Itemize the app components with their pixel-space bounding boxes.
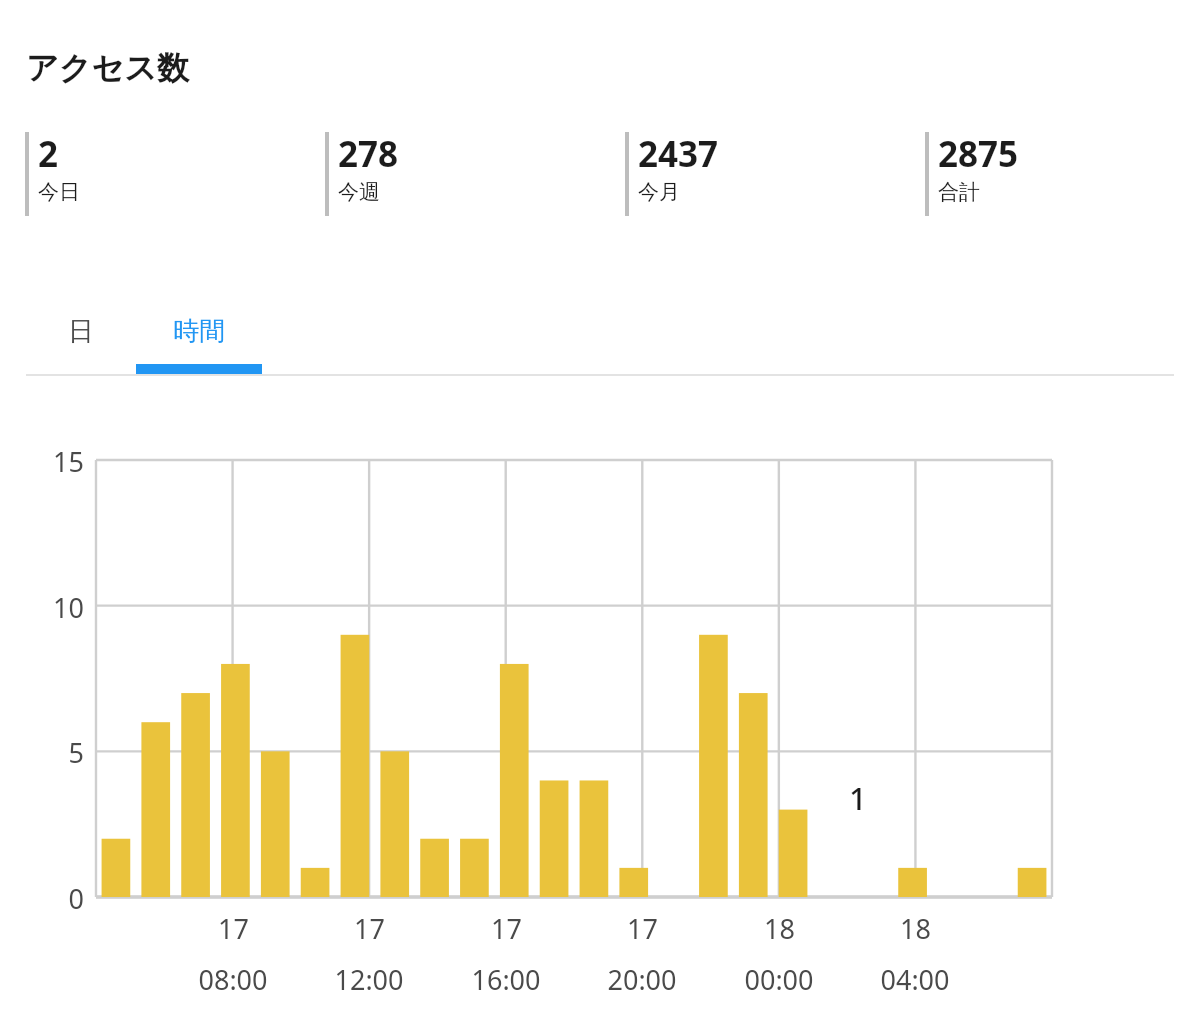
staticText: 04:00 [880, 961, 950, 998]
button[interactable]: 278 [300, 130, 600, 222]
staticText: 日 [68, 315, 94, 348]
staticText: 12:00 [334, 961, 404, 998]
staticText: 今日 [38, 179, 80, 205]
staticText: 08:00 [198, 961, 268, 998]
staticText: 17 [218, 910, 249, 947]
staticText: 17 [491, 910, 522, 947]
staticText: 2875 [938, 130, 1019, 178]
staticText: 時間 [173, 315, 225, 348]
staticText: 10 [53, 589, 84, 626]
staticText: 16:00 [471, 961, 541, 998]
staticText: 2 [38, 130, 59, 178]
staticText: 18 [900, 910, 931, 947]
staticText: 合計 [938, 179, 980, 205]
button[interactable]: 2 [0, 130, 300, 222]
staticText: アクセス数 [26, 48, 189, 88]
staticText: 00:00 [744, 961, 814, 998]
button[interactable]: 2437 [600, 130, 900, 222]
staticText: 今月 [638, 179, 680, 205]
staticText: 5 [68, 734, 84, 771]
staticText: 1 [849, 777, 867, 819]
button[interactable]: 2875 [900, 130, 1200, 222]
button[interactable]: 日 [26, 300, 136, 362]
button[interactable]: 時間 [136, 300, 262, 362]
staticText: 0 [68, 880, 84, 917]
staticText: 278 [338, 130, 399, 178]
staticText: 17 [627, 910, 658, 947]
staticText: 20:00 [607, 961, 677, 998]
staticText: 17 [354, 910, 385, 947]
staticText: 今週 [338, 179, 380, 205]
staticText: 18 [764, 910, 795, 947]
staticText: 2437 [638, 130, 719, 178]
staticText: 15 [53, 443, 84, 480]
